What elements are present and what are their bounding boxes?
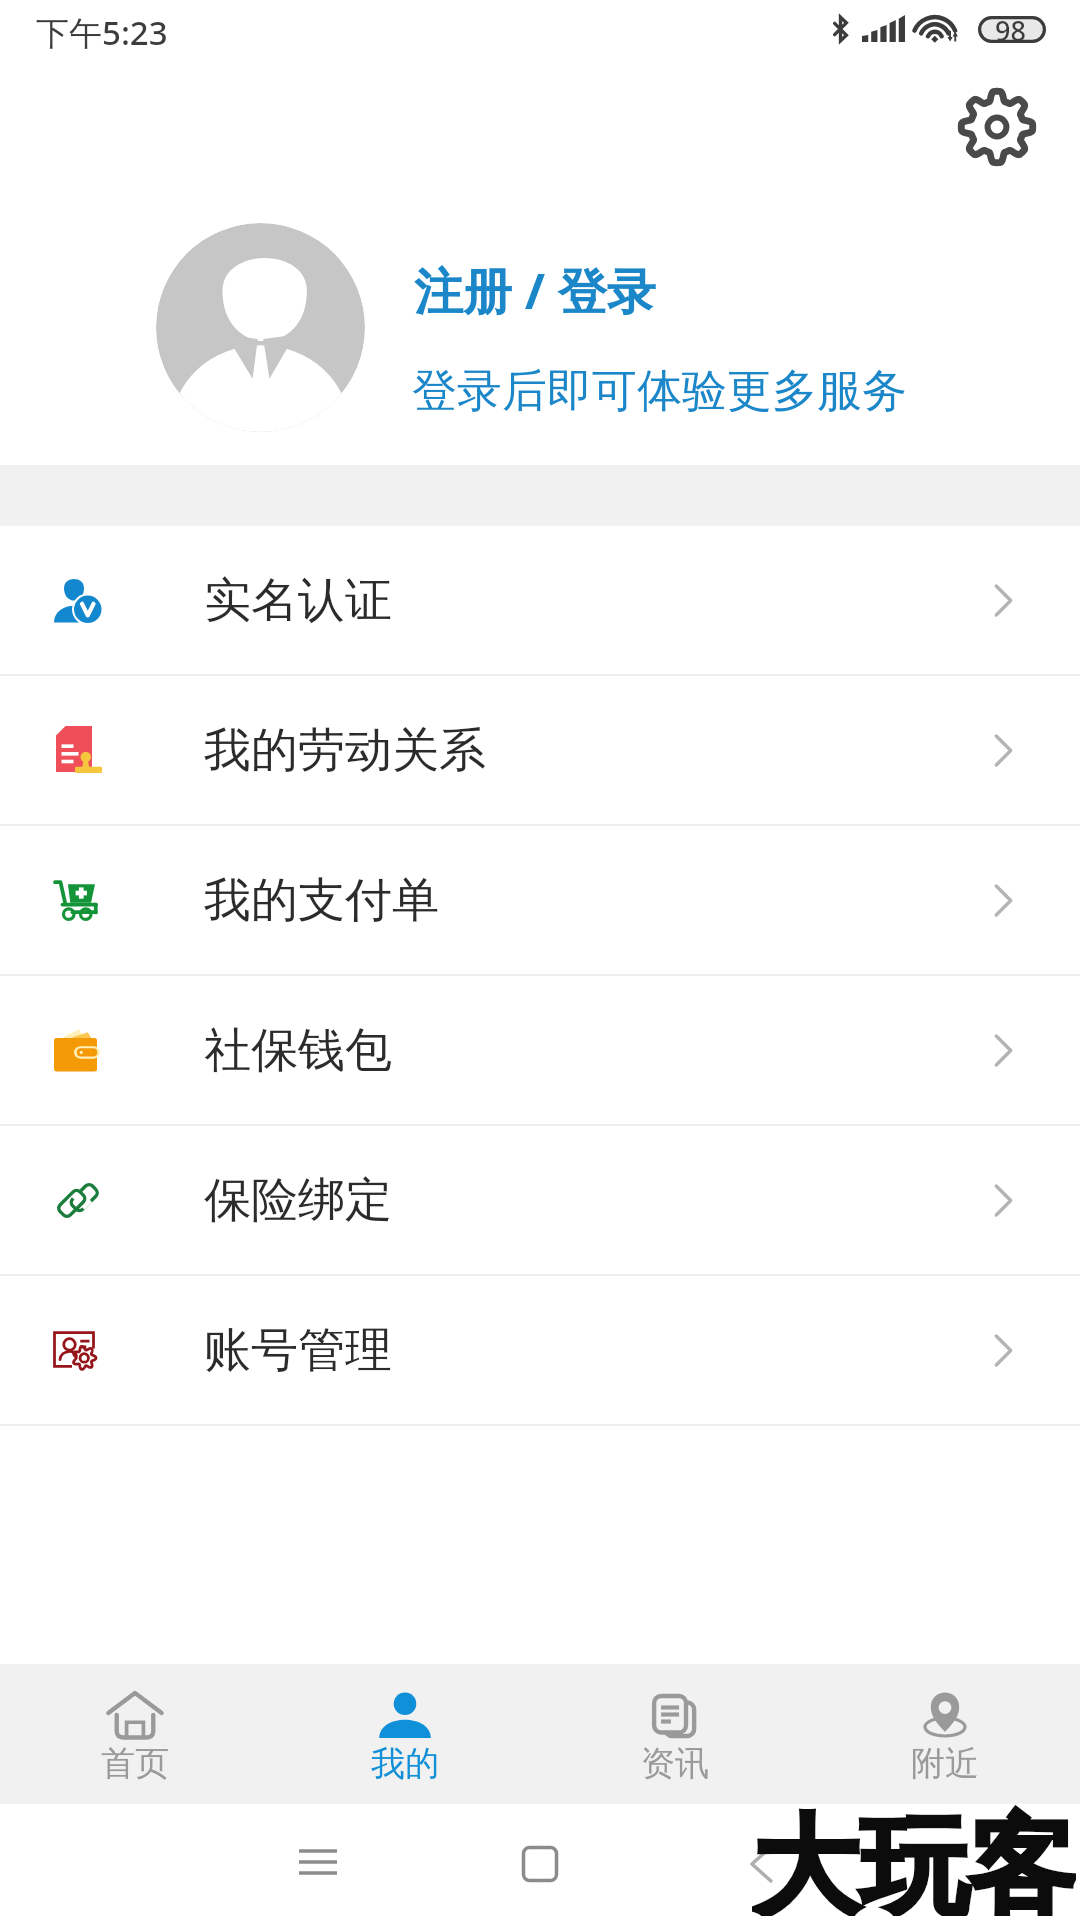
button[interactable]: 登录后即可体验更多服务 (412, 363, 907, 420)
button[interactable]: Back (752, 1846, 772, 1882)
button[interactable]: 资讯 (540, 1664, 810, 1804)
staticText: 首页 (101, 1742, 169, 1785)
button[interactable]: 注册 / 登录 (414, 257, 656, 324)
button[interactable]: 我的 (270, 1664, 540, 1804)
staticText: 98 (995, 12, 1026, 49)
button[interactable]: 账号管理 (0, 1276, 1080, 1424)
staticText: 大玩客 (752, 1800, 1076, 1916)
staticText: 登录后即可体验更多服务 (412, 363, 907, 420)
staticText: 保险绑定 (204, 1171, 392, 1230)
staticText: 下午5:23 (36, 10, 168, 55)
staticText: 账号管理 (204, 1321, 392, 1380)
staticText: 资讯 (641, 1742, 709, 1785)
button[interactable]: Home (522, 1846, 558, 1882)
button[interactable]: 附近 (810, 1664, 1080, 1804)
button[interactable]: 社保钱包 (0, 976, 1080, 1124)
staticText: 我的劳动关系 (204, 721, 486, 780)
button[interactable]: Recent apps (299, 1849, 337, 1875)
button[interactable]: Settings (947, 77, 1047, 177)
button[interactable]: 我的支付单 (0, 826, 1080, 974)
button[interactable]: 首页 (0, 1664, 270, 1804)
button[interactable]: 实名认证 (0, 526, 1080, 674)
button[interactable] (156, 223, 365, 432)
staticText: 我的 (371, 1742, 439, 1785)
staticText: 注册 / 登录 (414, 257, 656, 324)
staticText: 附近 (911, 1742, 979, 1785)
button[interactable]: 保险绑定 (0, 1126, 1080, 1274)
staticText: 实名认证 (204, 571, 392, 630)
button[interactable]: 我的劳动关系 (0, 676, 1080, 824)
staticText: 我的支付单 (204, 871, 439, 930)
staticText: 社保钱包 (204, 1021, 392, 1080)
